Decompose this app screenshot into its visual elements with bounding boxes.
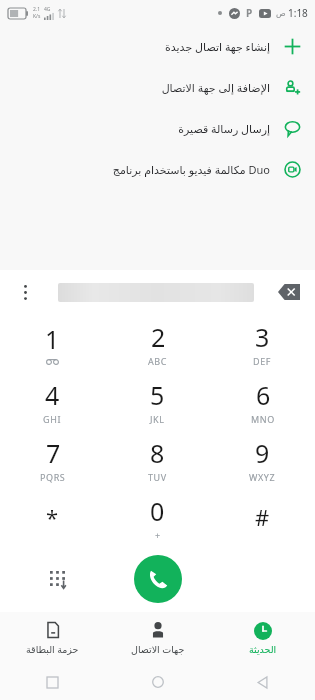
button[interactable]: 4	[0, 372, 105, 430]
staticText: 6	[256, 378, 271, 412]
button[interactable]: جهات الاتصال	[105, 612, 210, 664]
staticText: 0	[150, 494, 165, 528]
staticText: ABC	[148, 355, 168, 367]
staticText: الإضافة إلى جهة الاتصال	[161, 80, 270, 95]
staticText: 2.1	[33, 6, 41, 13]
button[interactable]: الإضافة إلى جهة الاتصال	[0, 67, 315, 108]
button[interactable]: Home	[105, 664, 210, 700]
button[interactable]: #	[210, 488, 315, 546]
button[interactable]: 9	[210, 430, 315, 488]
staticText: 7	[46, 436, 61, 470]
staticText: +	[155, 529, 161, 541]
staticText: GHI	[43, 413, 62, 425]
staticText: إرسال رسالة قصيرة	[178, 121, 270, 136]
staticText: MNO	[251, 413, 275, 425]
button[interactable]: Back	[210, 664, 315, 700]
button[interactable]: مكالمة فيديو باستخدام برنامج Duo	[0, 149, 315, 190]
staticText: 1	[45, 322, 60, 356]
button[interactable]: 7	[0, 430, 105, 488]
staticText: جهات الاتصال	[131, 643, 185, 656]
button[interactable]: حزمة البطاقة	[0, 612, 105, 664]
staticText: مكالمة فيديو باستخدام برنامج Duo	[112, 162, 270, 177]
button[interactable]: 5	[105, 372, 210, 430]
staticText: K/s	[33, 13, 41, 20]
button[interactable]: More options	[12, 279, 38, 305]
staticText: 9	[255, 436, 270, 470]
button[interactable]: 1	[0, 314, 105, 372]
staticText: PQRS	[40, 471, 66, 483]
staticText: ص	[276, 9, 286, 18]
button[interactable]: Backspace	[275, 278, 303, 306]
button[interactable]: 3	[210, 314, 315, 372]
button[interactable]: إنشاء جهة اتصال جديدة	[0, 26, 315, 67]
staticText: حزمة البطاقة	[26, 643, 79, 656]
button[interactable]: 2	[105, 314, 210, 372]
button[interactable]: Hide dialpad	[43, 564, 73, 594]
button[interactable]: *	[0, 488, 105, 546]
staticText: 4G	[44, 6, 51, 13]
button[interactable]: Call	[134, 555, 182, 603]
staticText: 4	[45, 378, 60, 412]
staticText: TUV	[148, 471, 167, 483]
button[interactable]: الحديثة	[210, 612, 315, 664]
button[interactable]: 0	[105, 488, 210, 546]
staticText: الحديثة	[249, 644, 277, 655]
staticText: #	[255, 502, 270, 532]
staticText: إنشاء جهة اتصال جديدة	[165, 39, 270, 54]
staticText: 8	[150, 436, 165, 470]
staticText: JKL	[150, 413, 165, 425]
button[interactable]: إرسال رسالة قصيرة	[0, 108, 315, 149]
staticText: 5	[150, 378, 165, 412]
staticText: DEF	[253, 355, 272, 367]
button[interactable]: 8	[105, 430, 210, 488]
staticText: 2	[151, 320, 166, 354]
staticText: WXYZ	[249, 471, 276, 483]
button[interactable]: Recents	[0, 664, 105, 700]
button[interactable]: 6	[210, 372, 315, 430]
staticText: 3	[255, 320, 270, 354]
staticText: *	[46, 502, 59, 532]
staticText: 1:18	[288, 6, 308, 20]
staticText: P	[246, 6, 253, 20]
